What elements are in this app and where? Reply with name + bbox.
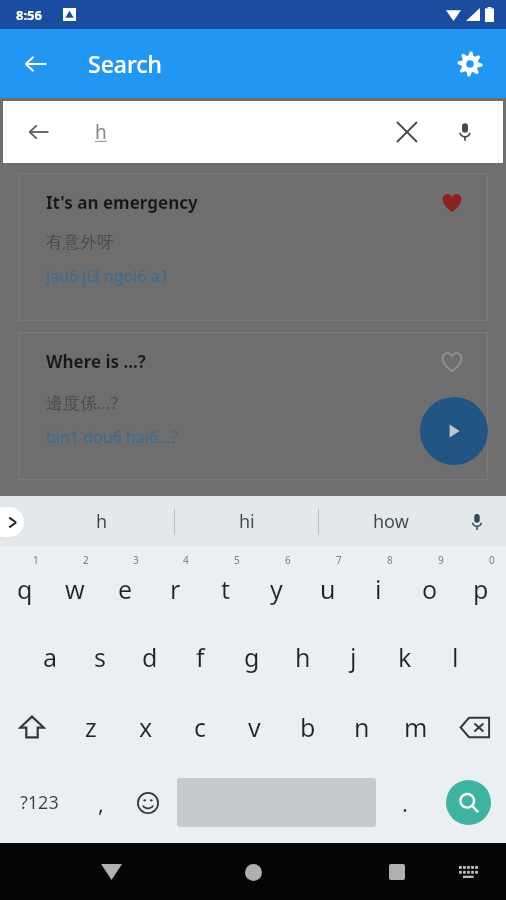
button[interactable]: Recents: [376, 851, 418, 893]
button[interactable]: 4: [150, 547, 200, 622]
button[interactable]: z: [63, 692, 118, 762]
button[interactable]: Search: [446, 780, 491, 825]
staticText: o: [422, 572, 438, 606]
button[interactable]: hi: [175, 496, 318, 547]
button[interactable]: .: [380, 762, 430, 843]
staticText: 9: [438, 553, 444, 567]
staticText: 1: [33, 553, 39, 567]
staticText: 8: [387, 553, 393, 567]
button[interactable]: x: [118, 692, 173, 762]
staticText: 2: [83, 553, 89, 567]
button[interactable]: n: [335, 692, 389, 762]
staticText: how: [373, 509, 409, 534]
staticText: v: [248, 710, 261, 744]
staticText: u: [320, 572, 336, 606]
staticText: ?123: [20, 790, 59, 815]
staticText: h: [95, 119, 107, 145]
button[interactable]: b: [281, 692, 335, 762]
staticText: d: [142, 640, 158, 674]
button[interactable]: a: [25, 622, 75, 692]
button[interactable]: 0: [455, 547, 506, 622]
button[interactable]: Voice search: [445, 112, 485, 152]
staticText: a: [43, 640, 58, 674]
staticText: 4: [183, 553, 189, 567]
button[interactable]: 3: [100, 547, 150, 622]
button[interactable]: Home: [232, 851, 274, 893]
staticText: j: [350, 640, 357, 674]
staticText: n: [354, 710, 370, 744]
button[interactable]: f: [175, 622, 226, 692]
button[interactable]: Where is ...?: [18, 332, 488, 480]
staticText: 8:56: [16, 6, 42, 24]
staticText: w: [65, 572, 85, 606]
button[interactable]: Emoji: [123, 762, 173, 843]
button[interactable]: Backspace: [443, 692, 506, 762]
button[interactable]: h: [30, 496, 174, 547]
staticText: 邊度係...?: [46, 391, 119, 414]
button[interactable]: Shift: [0, 692, 63, 762]
staticText: 有意外呀: [46, 232, 114, 253]
button[interactable]: h: [277, 622, 328, 692]
button[interactable]: 5: [200, 547, 251, 622]
button[interactable]: ?123: [0, 762, 78, 843]
staticText: jau6 ji3 ngoi6 a1: [46, 265, 169, 287]
button[interactable]: s: [75, 622, 125, 692]
staticText: m: [404, 710, 428, 744]
staticText: 3: [133, 553, 139, 567]
staticText: ,: [98, 788, 104, 818]
button[interactable]: j: [328, 622, 379, 692]
button[interactable]: 7: [302, 547, 353, 622]
button[interactable]: l: [430, 622, 481, 692]
button[interactable]: 2: [50, 547, 100, 622]
staticText: l: [452, 640, 459, 674]
staticText: Search: [88, 48, 162, 79]
button[interactable]: how: [319, 496, 462, 547]
button[interactable]: Remove favourite: [434, 185, 470, 221]
staticText: g: [244, 640, 260, 674]
button[interactable]: 8: [353, 547, 404, 622]
button[interactable]: Back: [19, 112, 59, 152]
button[interactable]: Add favourite: [434, 344, 470, 380]
staticText: z: [85, 710, 97, 744]
staticText: r: [170, 572, 181, 606]
staticText: q: [17, 572, 33, 606]
button[interactable]: Settings: [446, 40, 494, 88]
button[interactable]: v: [227, 692, 281, 762]
staticText: c: [194, 710, 207, 744]
button[interactable]: Back: [12, 40, 60, 88]
button[interactable]: c: [173, 692, 227, 762]
button[interactable]: Voice input: [460, 505, 494, 539]
staticText: bin1 dou6 hai6...?: [46, 426, 178, 448]
staticText: It's an emergency: [46, 191, 198, 214]
staticText: .: [402, 788, 408, 818]
button[interactable]: k: [379, 622, 430, 692]
button[interactable]: g: [226, 622, 277, 692]
staticText: h: [96, 509, 108, 534]
staticText: k: [398, 640, 412, 674]
button[interactable]: Back: [90, 851, 132, 893]
button[interactable]: Back: [3, 101, 503, 163]
staticText: s: [94, 640, 106, 674]
button[interactable]: Clear: [387, 112, 427, 152]
button[interactable]: It's an emergency: [18, 173, 488, 321]
staticText: 6: [285, 553, 291, 567]
staticText: 7: [336, 553, 342, 567]
button[interactable]: 1: [0, 547, 50, 622]
staticText: b: [300, 710, 316, 744]
button[interactable]: 9: [404, 547, 455, 622]
staticText: Where is ...?: [46, 350, 146, 373]
button[interactable]: 6: [251, 547, 302, 622]
staticText: e: [118, 572, 133, 606]
staticText: i: [375, 572, 382, 606]
button[interactable]: m: [389, 692, 443, 762]
button[interactable]: Switch keyboard: [450, 853, 488, 891]
button[interactable]: d: [125, 622, 175, 692]
staticText: t: [221, 572, 231, 606]
staticText: f: [196, 640, 205, 674]
staticText: h: [295, 640, 311, 674]
staticText: 5: [234, 553, 240, 567]
button[interactable]: More: [0, 507, 24, 537]
button[interactable]: ,: [78, 762, 123, 843]
button[interactable]: Play: [420, 397, 488, 465]
